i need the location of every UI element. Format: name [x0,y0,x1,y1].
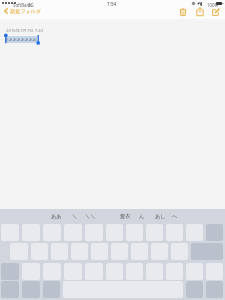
staticText: 2016年7月7日 7:43 [6,27,44,33]
button[interactable]: へ [169,211,181,222]
staticText: 100% [207,2,219,8]
staticText: ＼ [72,213,78,220]
staticText: 3G [28,2,34,8]
staticText: ああ [51,213,62,220]
button[interactable]: ああああああああ [5,36,37,43]
button[interactable]: Delete [176,5,189,18]
button[interactable]: ＼＼ [82,211,99,222]
button[interactable]: ＼ [69,211,81,222]
staticText: あし [155,213,166,220]
staticText: SoftBank [13,2,32,8]
button[interactable]: あし [152,211,169,222]
button[interactable]: ああ [48,211,65,222]
staticText: 新規フォルダ [10,8,42,14]
staticText: 7:54 [107,1,117,7]
button[interactable]: Compose [209,5,222,18]
staticText: ああああああああ [5,37,37,42]
staticText: ん [139,213,145,220]
staticText: ＼＼ [85,213,96,220]
button[interactable]: Share [193,5,206,18]
staticText: 愛衣 [120,213,131,220]
staticText: へ [172,213,178,220]
button[interactable]: 愛衣 [117,211,134,222]
button[interactable]: ん [136,211,148,222]
button[interactable]: 新規フォルダ [3,7,43,15]
